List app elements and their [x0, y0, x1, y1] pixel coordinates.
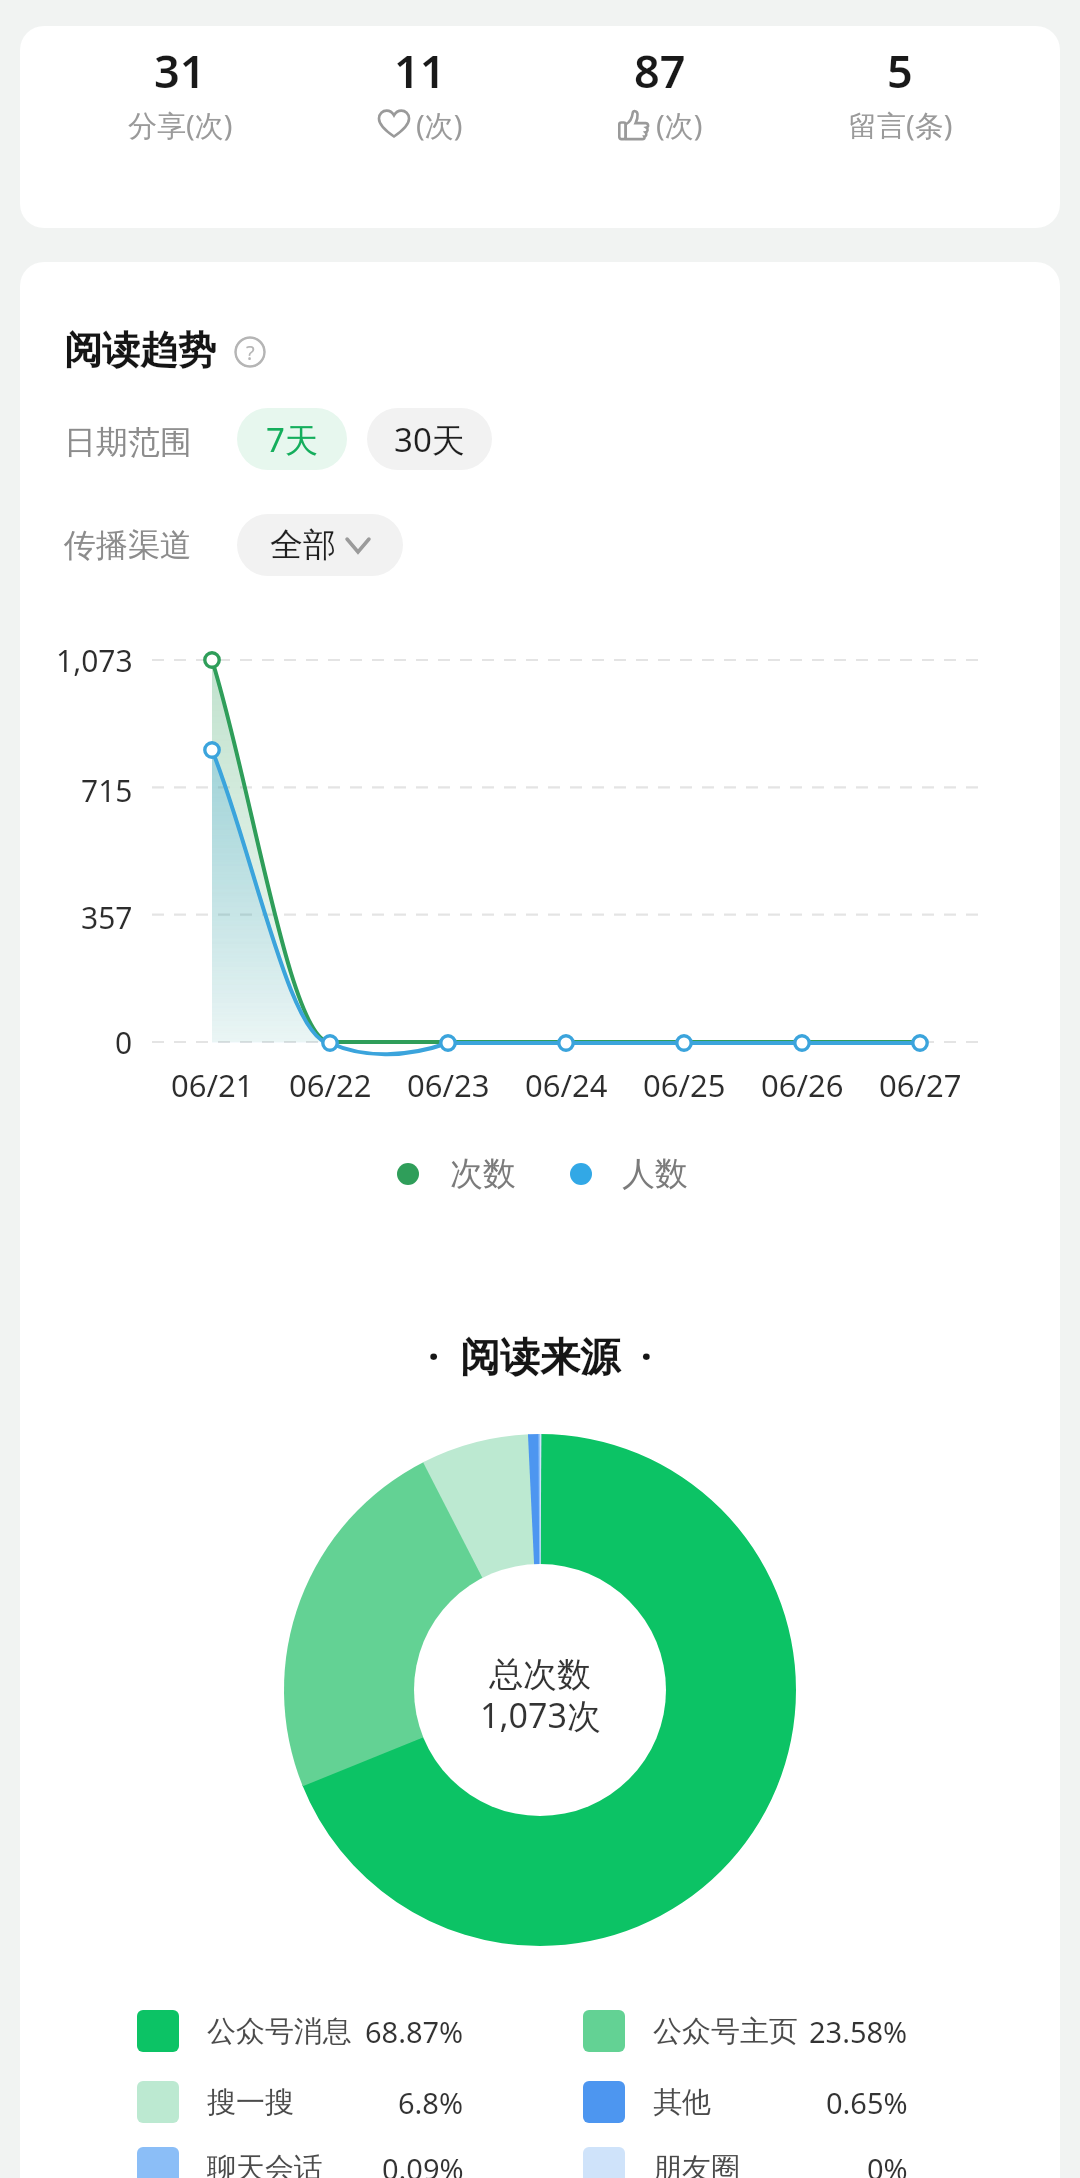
- staticText: 1,073: [56, 640, 133, 681]
- staticText: (次): [656, 105, 703, 145]
- staticText: 06/22: [289, 1064, 372, 1106]
- staticText: 357: [81, 897, 133, 938]
- staticText: ?: [246, 339, 255, 366]
- staticText: 日期范围: [64, 422, 192, 462]
- staticText: 人数: [622, 1153, 688, 1195]
- button[interactable]: 全部: [237, 514, 403, 576]
- staticText: 715: [81, 770, 133, 811]
- staticText: 次数: [450, 1153, 516, 1195]
- staticText: 06/26: [761, 1064, 844, 1106]
- staticText: 朋友圈: [653, 2150, 740, 2178]
- staticText: 23.58%: [809, 2012, 908, 2051]
- staticText: 6.8%: [398, 2083, 464, 2122]
- staticText: 公众号主页: [653, 2013, 798, 2050]
- staticText: 聊天会话: [207, 2150, 323, 2178]
- staticText: 0.65%: [826, 2083, 908, 2122]
- staticText: 06/23: [407, 1064, 490, 1106]
- staticText: · 阅读来源 ·: [428, 1328, 653, 1383]
- button[interactable]: 30天: [367, 408, 492, 470]
- staticText: (次): [416, 105, 463, 145]
- staticText: 31: [154, 40, 206, 101]
- staticText: 87: [634, 40, 686, 101]
- staticText: 7天: [266, 417, 318, 462]
- staticText: 其他: [653, 2084, 711, 2121]
- staticText: 06/21: [171, 1064, 254, 1106]
- staticText: 分享(次): [128, 105, 233, 145]
- button[interactable]: ?: [234, 336, 266, 368]
- staticText: 阅读趋势: [64, 326, 216, 374]
- staticText: 留言(条): [848, 105, 953, 145]
- staticText: 总次数: [489, 1653, 591, 1696]
- staticText: 68.87%: [365, 2012, 464, 2051]
- staticText: 0%: [867, 2149, 908, 2178]
- staticText: 0.09%: [382, 2149, 464, 2178]
- staticText: 全部: [270, 524, 336, 566]
- staticText: 30天: [394, 417, 465, 462]
- staticText: 06/25: [643, 1064, 726, 1106]
- button[interactable]: 7天: [237, 408, 347, 470]
- staticText: 搜一搜: [207, 2084, 294, 2121]
- staticText: 0: [115, 1022, 133, 1063]
- staticText: 公众号消息: [207, 2013, 352, 2050]
- staticText: 06/24: [525, 1064, 608, 1106]
- staticText: 11: [394, 40, 446, 101]
- staticText: 5: [887, 40, 913, 101]
- staticText: 1,073次: [480, 1692, 601, 1738]
- staticText: 06/27: [879, 1064, 962, 1106]
- staticText: 传播渠道: [64, 525, 192, 565]
